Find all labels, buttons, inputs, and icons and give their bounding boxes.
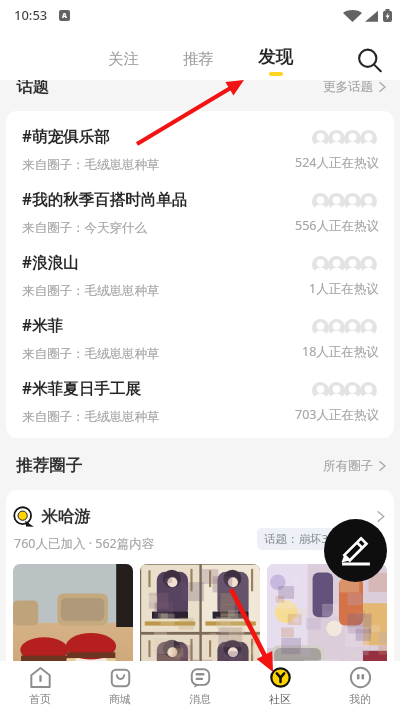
- button[interactable]: Search: [351, 42, 387, 78]
- staticText: 来自圈子：毛绒崽崽种草: [22, 283, 160, 299]
- button[interactable]: #萌宠俱乐部: [6, 113, 394, 176]
- button[interactable]: [13, 564, 133, 704]
- staticText: 18人正在热议: [302, 343, 379, 360]
- staticText: 所有圈子: [323, 458, 373, 474]
- staticText: 更多话题: [323, 79, 373, 95]
- button[interactable]: 米哈游: [13, 506, 386, 527]
- staticText: 消息: [189, 692, 211, 706]
- staticText: 社区: [269, 692, 291, 706]
- staticText: 760人已加入 · 562篇内容: [14, 535, 155, 552]
- button[interactable]: 首页: [0, 661, 80, 710]
- staticText: 1人正在热议: [309, 280, 379, 297]
- staticText: 703人正在热议: [295, 406, 379, 423]
- staticText: 来自圈子：毛绒崽崽种草: [22, 346, 160, 362]
- staticText: 推荐圈子: [16, 455, 82, 476]
- staticText: 话题：崩坏3: [264, 531, 329, 547]
- staticText: 商城: [109, 692, 131, 706]
- button[interactable]: #浪浪山: [6, 239, 394, 302]
- button[interactable]: #我的秋季百搭时尚单品: [6, 176, 394, 239]
- button[interactable]: Write post: [324, 519, 387, 582]
- staticText: #萌宠俱乐部: [22, 125, 110, 146]
- button[interactable]: [140, 564, 260, 704]
- button[interactable]: 所有圈子: [323, 458, 387, 474]
- staticText: 话题: [16, 76, 49, 97]
- staticText: A: [62, 11, 67, 21]
- staticText: 我的: [349, 692, 371, 706]
- staticText: 来自圈子：今天穿什么: [22, 220, 147, 236]
- button[interactable]: [267, 564, 387, 704]
- staticText: 关注: [108, 49, 139, 69]
- button[interactable]: 话题：崩坏3: [264, 531, 329, 547]
- staticText: 556人正在热议: [295, 217, 379, 234]
- staticText: #浪浪山: [22, 251, 79, 272]
- staticText: #我的秋季百搭时尚单品: [22, 188, 188, 209]
- button[interactable]: 社区: [240, 661, 320, 710]
- staticText: 米哈游: [41, 506, 91, 527]
- staticText: 来自圈子：毛绒崽崽种草: [22, 157, 160, 173]
- button[interactable]: 关注: [105, 49, 142, 69]
- button[interactable]: #米菲夏日手工展: [6, 365, 394, 428]
- button[interactable]: 商城: [80, 661, 160, 710]
- staticText: 首页: [29, 692, 51, 706]
- staticText: 524人正在热议: [295, 154, 379, 171]
- button[interactable]: #米菲: [6, 302, 394, 365]
- button[interactable]: 推荐: [180, 49, 217, 69]
- staticText: 来自圈子：毛绒崽崽种草: [22, 409, 160, 425]
- button[interactable]: 我的: [320, 661, 400, 710]
- staticText: 推荐: [183, 49, 214, 69]
- button[interactable]: 更多话题: [323, 79, 387, 95]
- button[interactable]: 发现: [255, 46, 296, 76]
- staticText: #米菲夏日手工展: [22, 377, 141, 398]
- staticText: 发现: [258, 46, 293, 68]
- staticText: #米菲: [22, 314, 64, 335]
- button[interactable]: 消息: [160, 661, 240, 710]
- staticText: 10:53: [14, 6, 48, 24]
